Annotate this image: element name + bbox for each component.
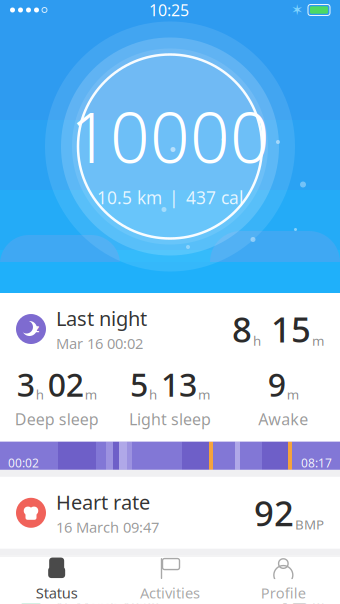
staticText: 15 March 18:20: [56, 596, 159, 604]
staticText: 10.5 km: [97, 186, 162, 209]
staticText: 00:02: [8, 455, 39, 471]
staticText: 437 cal: [186, 186, 243, 209]
staticText: m: [198, 385, 210, 403]
staticText: 13: [161, 363, 197, 405]
staticText: 10:25: [149, 0, 189, 21]
button[interactable]: Profile: [227, 552, 340, 604]
staticText: Last night: [56, 305, 147, 332]
staticText: Mar 16 00:02: [56, 334, 143, 353]
staticText: h: [36, 385, 44, 403]
staticText: h: [149, 385, 157, 403]
staticText: 9: [268, 363, 286, 405]
button[interactable]: z: [0, 293, 340, 470]
staticText: z: [34, 321, 39, 335]
staticText: h: [253, 332, 261, 349]
staticText: 08:17: [301, 455, 332, 471]
staticText: BMP: [295, 515, 324, 533]
staticText: 45: [271, 569, 311, 604]
staticText: Light sleep: [129, 408, 211, 430]
staticText: m: [312, 594, 324, 604]
staticText: Last workout: [56, 568, 177, 594]
staticText: 16 March 09:47: [56, 517, 159, 537]
staticText: 10000: [70, 90, 270, 182]
staticText: Profile: [261, 583, 306, 603]
staticText: m: [85, 385, 97, 403]
button[interactable]: Activities: [113, 552, 227, 604]
staticText: 92: [254, 490, 294, 536]
staticText: 3: [17, 363, 35, 405]
staticText: 8: [232, 306, 252, 352]
staticText: Awake: [258, 408, 308, 430]
staticText: 02: [48, 363, 84, 405]
staticText: m: [287, 385, 299, 403]
staticText: Deep sleep: [15, 408, 99, 430]
staticText: Activities: [140, 583, 200, 603]
staticText: |: [169, 186, 179, 209]
staticText: Status: [36, 583, 78, 603]
staticText: Heart rate: [56, 489, 150, 515]
button[interactable]: Status: [0, 552, 113, 604]
button[interactable]: Last workout: [0, 556, 340, 604]
button[interactable]: Heart rate: [0, 477, 340, 549]
staticText: ✶: [291, 2, 303, 18]
staticText: 5: [130, 363, 148, 405]
staticText: 15: [271, 306, 311, 352]
staticText: m: [312, 332, 324, 349]
